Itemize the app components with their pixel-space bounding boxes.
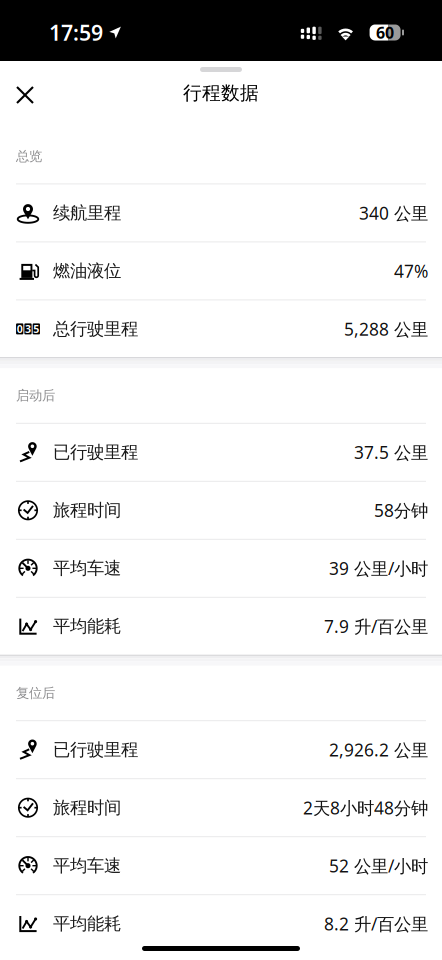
staticText: 7.9 升/百公里: [324, 615, 428, 638]
staticText: 总行驶里程: [53, 318, 138, 340]
button[interactable]: 已行驶里程: [0, 720, 442, 778]
staticText: 已行驶里程: [53, 442, 138, 463]
staticText: 平均能耗: [53, 616, 121, 637]
staticText: 37.5 公里: [354, 441, 428, 464]
button[interactable]: 平均车速: [0, 539, 442, 597]
staticText: 平均车速: [53, 558, 121, 579]
staticText: 2,926.2 公里: [329, 738, 428, 761]
staticText: 旅程时间: [53, 797, 121, 818]
button[interactable]: 燃油液位: [0, 241, 442, 299]
staticText: 3: [25, 322, 31, 336]
staticText: 52 公里/小时: [329, 854, 428, 877]
button[interactable]: 续航里程: [0, 183, 442, 241]
staticText: 47%: [394, 259, 428, 282]
button[interactable]: 旅程时间: [0, 778, 442, 836]
button[interactable]: Close: [3, 73, 47, 117]
staticText: 续航里程: [53, 202, 121, 224]
staticText: 平均车速: [53, 855, 121, 876]
staticText: 已行驶里程: [53, 739, 138, 760]
staticText: 58分钟: [374, 499, 428, 522]
staticText: 39 公里/小时: [329, 557, 428, 580]
button[interactable]: 已行驶里程: [0, 423, 442, 481]
staticText: 行程数据: [183, 81, 259, 104]
staticText: 60: [376, 22, 394, 43]
button[interactable]: 平均车速: [0, 836, 442, 894]
staticText: 平均能耗: [53, 913, 121, 934]
staticText: 340 公里: [359, 201, 428, 224]
staticText: 2天8小时48分钟: [303, 796, 428, 819]
staticText: 燃油液位: [53, 260, 121, 282]
button[interactable]: 0: [0, 299, 442, 357]
button[interactable]: 旅程时间: [0, 481, 442, 539]
staticText: 17:59: [49, 18, 103, 47]
button[interactable]: 平均能耗: [0, 597, 442, 655]
staticText: 0: [17, 322, 23, 336]
staticText: 启动后: [16, 387, 55, 404]
staticText: 8.2 升/百公里: [324, 912, 428, 935]
staticText: 复位后: [16, 685, 55, 701]
button[interactable]: 平均能耗: [0, 894, 442, 952]
staticText: 5,288 公里: [344, 317, 428, 340]
staticText: 5: [33, 322, 39, 336]
staticText: 旅程时间: [53, 500, 121, 521]
staticText: 总览: [16, 148, 42, 164]
